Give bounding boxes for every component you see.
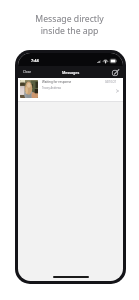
staticText: 7:44 — [31, 58, 39, 63]
button[interactable]: Close — [18, 68, 37, 76]
staticText: Tracey Andrews — [42, 86, 62, 90]
button[interactable]: Waiting for response — [18, 78, 123, 101]
staticText: Message directly inside the app — [35, 13, 104, 37]
staticText: Waiting for response — [42, 80, 72, 84]
button[interactable]: Compose new message — [110, 67, 120, 77]
staticText: 04/10/21 — [105, 80, 117, 84]
staticText: Messages — [62, 70, 80, 75]
